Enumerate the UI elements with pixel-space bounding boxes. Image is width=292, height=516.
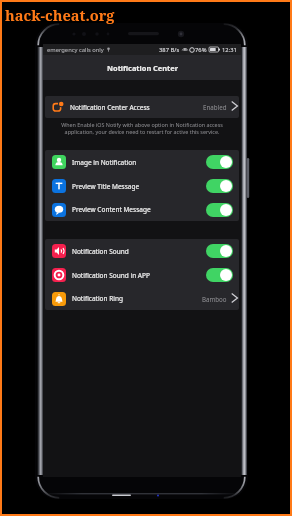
staticText: Preview Content Message [72, 205, 151, 214]
staticText: Notification Sound in APP [72, 271, 150, 280]
staticText: 12:31 [222, 46, 237, 54]
staticText: 387 B/s [159, 46, 180, 54]
staticText: Enabled [203, 103, 227, 111]
button[interactable]: Image in Notification [45, 150, 239, 174]
staticText: 76% [195, 46, 207, 54]
button[interactable]: Notification Sound [45, 239, 239, 263]
staticText: Preview Title Message [72, 182, 140, 191]
staticText: emergency calls only [47, 46, 104, 54]
button[interactable]: Preview Content Message [45, 198, 239, 221]
staticText: When Enable iOS Notify with above option… [59, 121, 225, 135]
staticText: Image in Notification [72, 158, 137, 167]
staticText: Bamboo [202, 295, 227, 303]
staticText: Notification Ring [72, 294, 123, 303]
button[interactable]: Notification Center Access [45, 96, 239, 118]
staticText: hack-cheat.org [5, 5, 115, 25]
button[interactable]: Preview Title Message [45, 174, 239, 198]
staticText: Notification Center Access [70, 103, 150, 112]
button[interactable]: Notification Sound in APP [45, 263, 239, 287]
staticText: Notification Center [107, 63, 178, 73]
button[interactable]: Notification Ring [45, 287, 239, 310]
staticText: Notification Sound [72, 247, 129, 256]
